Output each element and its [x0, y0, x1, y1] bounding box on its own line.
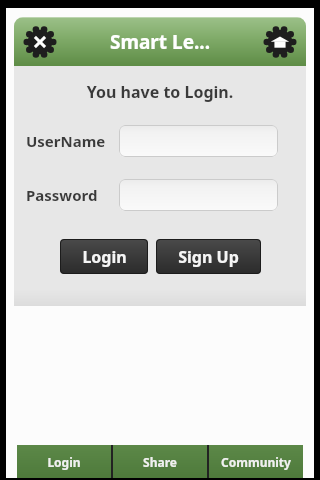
staticText: Login	[82, 246, 127, 268]
button[interactable]: Login	[17, 445, 111, 478]
staticText: Community	[221, 454, 291, 470]
button[interactable]: Login	[60, 239, 148, 274]
button[interactable]: Share	[113, 445, 207, 478]
staticText: Share	[143, 454, 177, 470]
button[interactable]: Close	[24, 26, 56, 58]
button[interactable]	[119, 179, 278, 211]
staticText: UserName	[26, 131, 106, 151]
button[interactable]: Sign Up	[156, 239, 261, 274]
staticText: Sign Up	[178, 246, 239, 268]
staticText: You have to Login.	[14, 81, 306, 103]
button[interactable]: Community	[209, 445, 303, 478]
staticText: Password	[26, 185, 98, 205]
button[interactable]	[119, 125, 278, 157]
staticText: Smart Le...	[14, 29, 306, 55]
staticText: Login	[47, 454, 81, 470]
button[interactable]: Home	[264, 26, 296, 58]
